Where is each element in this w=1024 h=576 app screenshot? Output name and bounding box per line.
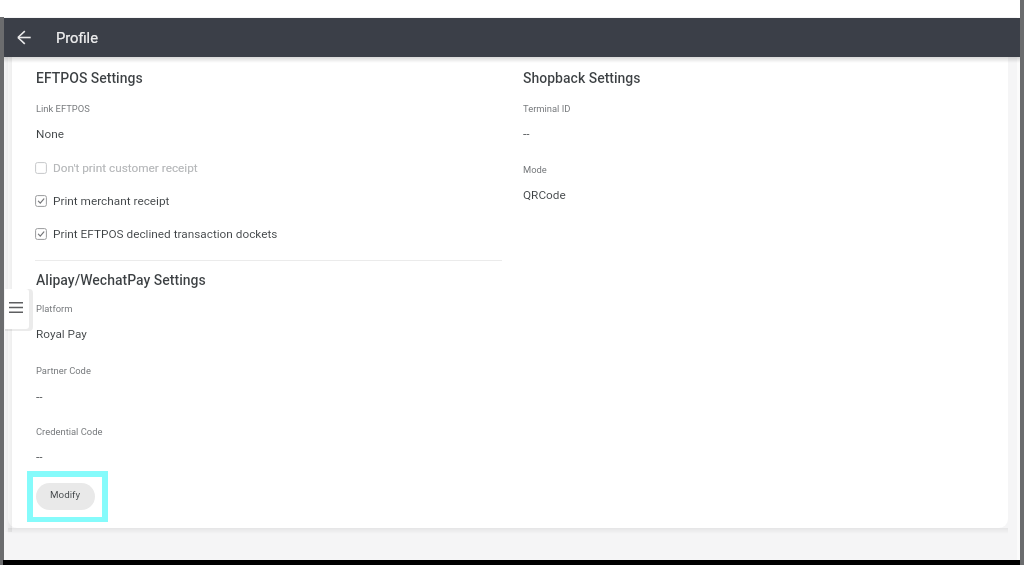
button[interactable]: Print merchant receipt	[29, 190, 239, 212]
staticText: Print EFTPOS declined transaction docket…	[53, 227, 278, 241]
staticText: Royal Pay	[36, 327, 87, 341]
staticText: QRCode	[523, 188, 566, 202]
staticText: Credential Code	[36, 426, 103, 437]
staticText: EFTPOS Settings	[36, 70, 143, 86]
staticText: Partner Code	[36, 365, 91, 376]
staticText: Don't print customer receipt	[53, 161, 198, 175]
staticText: Platform	[36, 303, 73, 314]
staticText: Mode	[523, 164, 547, 175]
button[interactable]: Back	[6, 18, 42, 57]
staticText: Link EFTPOS	[36, 103, 90, 114]
staticText: Shopback Settings	[523, 70, 641, 86]
button[interactable]: Print EFTPOS declined transaction docket…	[29, 223, 329, 245]
staticText: None	[36, 127, 64, 141]
staticText: --	[36, 390, 43, 404]
staticText: Alipay/WechatPay Settings	[36, 272, 206, 288]
staticText: Terminal ID	[523, 103, 571, 114]
button[interactable]: Open navigation menu	[5, 289, 29, 329]
staticText: Print merchant receipt	[53, 194, 170, 208]
button[interactable]: Modify	[36, 483, 95, 510]
staticText: Modify	[50, 489, 81, 500]
staticText: Profile	[56, 29, 98, 46]
staticText: --	[523, 127, 530, 141]
staticText: --	[36, 450, 43, 464]
button[interactable]: Don't print customer receipt	[29, 157, 279, 179]
